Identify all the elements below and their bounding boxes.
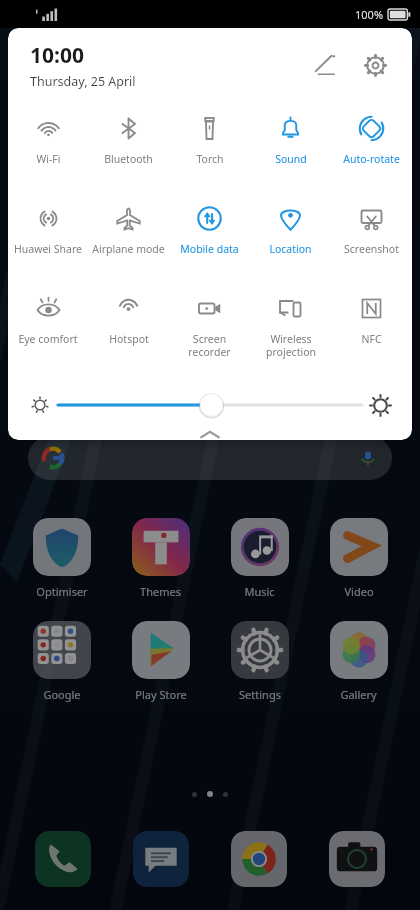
button[interactable]: Google search <box>28 436 392 480</box>
button[interactable]: MESSAGES <box>133 831 189 887</box>
button[interactable]: Decrease brightness <box>22 387 58 423</box>
staticText: Location <box>269 242 312 256</box>
staticText: 100% <box>355 7 384 22</box>
button[interactable]: Airplane mode <box>88 192 169 282</box>
button[interactable]: Bluetooth <box>88 102 169 192</box>
staticText: Music <box>244 584 275 599</box>
staticText: Play Store <box>135 687 187 702</box>
button[interactable]: Wireless projection <box>250 282 331 382</box>
button[interactable]: Settings <box>210 621 309 702</box>
staticText: Screenshot <box>344 242 399 256</box>
staticText: Screen recorder <box>188 332 231 359</box>
button[interactable]: CAMERA <box>329 831 385 887</box>
button[interactable]: Themes <box>111 518 210 599</box>
staticText: Settings <box>239 687 281 702</box>
staticText: Sound <box>275 152 307 166</box>
button[interactable]: Auto-rotate <box>331 102 412 192</box>
button[interactable]: Google <box>12 621 111 702</box>
button[interactable]: Increase brightness <box>362 387 398 423</box>
staticText: Huawei Share <box>14 242 82 256</box>
staticText: Torch <box>196 152 224 166</box>
button[interactable]: Screen recorder <box>169 282 250 382</box>
button[interactable]: Music <box>210 518 309 599</box>
staticText: Optimiser <box>36 584 88 599</box>
staticText: Mobile data <box>180 242 239 256</box>
button[interactable]: Huawei Share <box>8 192 88 282</box>
button[interactable]: Torch <box>169 102 250 192</box>
button[interactable]: Eye comfort <box>8 282 88 382</box>
button[interactable]: Location <box>250 192 331 282</box>
staticText: NFC <box>361 332 382 346</box>
staticText: Thursday, 25 April <box>30 73 136 90</box>
staticText: Google <box>43 687 81 702</box>
button[interactable]: CHROME <box>231 831 287 887</box>
button[interactable]: Optimiser <box>12 518 111 599</box>
button[interactable]: Collapse <box>8 428 412 440</box>
staticText: Gallery <box>340 687 377 702</box>
staticText: Airplane mode <box>92 242 165 256</box>
button[interactable]: Mobile data <box>169 192 250 282</box>
staticText: Wi-Fi <box>36 152 61 166</box>
staticText: Eye comfort <box>18 332 78 346</box>
button[interactable]: Screenshot <box>331 192 412 282</box>
staticText: Video <box>344 584 374 599</box>
button[interactable]: Settings <box>354 44 396 86</box>
button[interactable]: Hotspot <box>88 282 169 382</box>
staticText: Auto-rotate <box>343 152 400 166</box>
button[interactable]: Play Store <box>111 621 210 702</box>
button[interactable]: Video <box>309 518 408 599</box>
staticText: Hotspot <box>109 332 149 346</box>
button[interactable]: NFC <box>331 282 412 382</box>
button[interactable]: Sound <box>250 102 331 192</box>
staticText: 10:00 <box>30 41 84 70</box>
button[interactable]: Wi-Fi <box>8 102 88 192</box>
button[interactable]: PHONE <box>35 831 91 887</box>
staticText: Bluetooth <box>104 152 153 166</box>
staticText: Wireless projection <box>266 332 316 359</box>
button[interactable]: Edit quick settings <box>304 44 346 86</box>
button[interactable]: Brightness <box>58 387 362 423</box>
button[interactable]: Gallery <box>309 621 408 702</box>
staticText: Themes <box>140 584 181 599</box>
